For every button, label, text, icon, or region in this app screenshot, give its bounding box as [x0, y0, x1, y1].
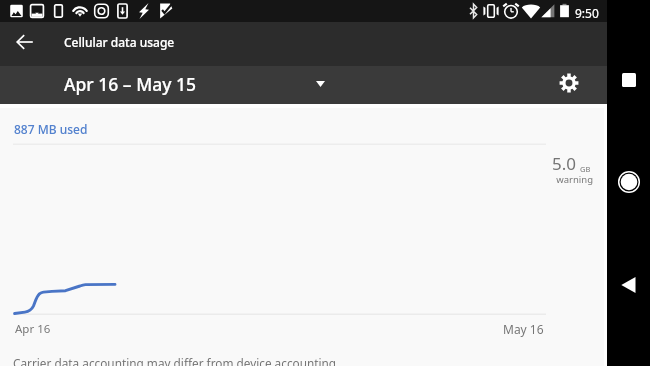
staticText: GB — [580, 164, 591, 174]
staticText: 5.0 — [552, 152, 577, 175]
button[interactable]: 887 MB used — [14, 121, 88, 137]
staticText: Carrier data accounting may differ from … — [13, 355, 340, 366]
button[interactable]: Home — [611, 164, 647, 200]
button[interactable] — [0, 66, 340, 104]
button[interactable]: Back — [611, 267, 647, 303]
staticText: 9:50 — [575, 5, 599, 21]
staticText: Apr 16 — [15, 321, 51, 337]
staticText: Cellular data usage — [64, 34, 175, 50]
button[interactable]: Recent apps — [611, 62, 647, 98]
staticText: warning — [500, 173, 593, 186]
button[interactable]: Settings — [549, 64, 589, 102]
button[interactable]: Navigate up — [4, 22, 46, 62]
staticText: Apr 16 – May 15 — [64, 72, 197, 96]
staticText: May 16 — [503, 321, 544, 337]
